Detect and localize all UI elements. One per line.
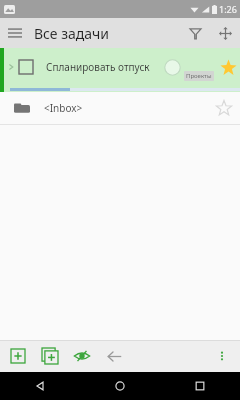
button[interactable]: Add task (4, 342, 32, 370)
staticText: 1:26 (219, 3, 237, 15)
button[interactable]: Add subtask (36, 342, 64, 370)
staticText: <Inbox> (44, 101, 210, 115)
button[interactable]: Toggle hidden tasks (68, 342, 96, 370)
staticText: Спланировать отпуск (46, 60, 164, 74)
button[interactable]: Expand (0, 48, 240, 86)
button[interactable]: Complete task (18, 59, 34, 75)
button[interactable]: Back (0, 372, 80, 400)
button[interactable]: More options (208, 342, 236, 370)
button[interactable]: Open navigation menu (0, 18, 30, 48)
button[interactable]: Expand (7, 63, 15, 71)
button[interactable]: Back (100, 342, 128, 370)
staticText: Проекты (186, 72, 212, 80)
button[interactable]: Recent apps (160, 372, 240, 400)
button[interactable]: Home (80, 372, 160, 400)
button[interactable]: Move (210, 18, 240, 48)
button[interactable]: <Inbox> (0, 92, 240, 124)
button[interactable]: Starred (216, 55, 240, 79)
button[interactable]: Filter (180, 18, 210, 48)
button[interactable]: Add star (210, 94, 238, 122)
staticText: Все задачи (34, 24, 180, 43)
